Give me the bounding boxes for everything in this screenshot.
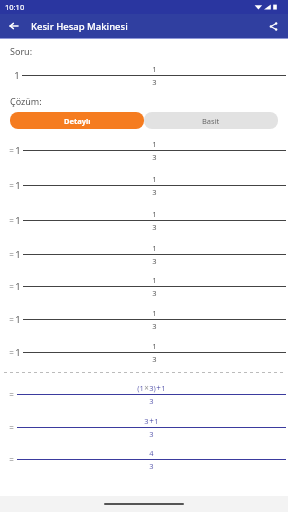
staticText: + [149, 415, 154, 426]
staticText: 1 [15, 280, 21, 293]
staticText: 1 [154, 416, 159, 426]
staticText: = [8, 314, 15, 325]
staticText: + [156, 382, 161, 393]
staticText: 1 [15, 179, 21, 192]
staticText: 1 [15, 144, 21, 157]
button[interactable]: Back [5, 17, 23, 35]
staticText: Kesir Hesap Makinesi [31, 20, 128, 33]
staticText: 1 [152, 139, 157, 149]
staticText: (1 [137, 383, 144, 393]
staticText: 10:10 [5, 2, 25, 12]
staticText: × [144, 382, 149, 393]
staticText: 3 [144, 416, 149, 426]
staticText: 1 [152, 243, 157, 253]
staticText: 3 [152, 288, 157, 298]
staticText: = [8, 215, 15, 226]
button[interactable]: Share [264, 17, 282, 35]
staticText: 1 [152, 64, 157, 74]
staticText: 1 [14, 69, 20, 82]
staticText: = [8, 347, 15, 358]
staticText: 3 [149, 461, 154, 471]
staticText: 1 [15, 214, 21, 227]
staticText: Basit [202, 116, 220, 126]
staticText: 3) [149, 383, 156, 393]
staticText: 3 [152, 222, 157, 232]
staticText: 3 [152, 354, 157, 364]
staticText: = [8, 389, 15, 400]
staticText: = [8, 422, 15, 433]
staticText: 3 [149, 429, 154, 439]
staticText: = [8, 281, 15, 292]
staticText: 3 [149, 396, 154, 406]
staticText: 3 [152, 321, 157, 331]
staticText: 1 [152, 275, 157, 285]
staticText: 1 [15, 313, 21, 326]
staticText: Detaylı [64, 116, 91, 126]
staticText: 1 [15, 346, 21, 359]
staticText: = [8, 454, 15, 465]
staticText: = [8, 145, 15, 156]
staticText: Çözüm: [10, 95, 42, 107]
staticText: Soru: [10, 45, 33, 57]
button[interactable]: Basit [144, 112, 278, 129]
button[interactable]: Detaylı [10, 112, 144, 129]
staticText: 1 [152, 174, 157, 184]
staticText: 3 [152, 152, 157, 162]
staticText: 1 [152, 209, 157, 219]
staticText: 1 [152, 341, 157, 351]
staticText: = [8, 180, 15, 191]
staticText: 1 [152, 308, 157, 318]
staticText: 3 [152, 256, 157, 266]
staticText: = [8, 249, 15, 260]
staticText: 1 [15, 248, 21, 261]
staticText: 3 [152, 77, 157, 87]
staticText: 1 [161, 383, 166, 393]
staticText: 4 [149, 448, 154, 458]
staticText: 3 [152, 187, 157, 197]
